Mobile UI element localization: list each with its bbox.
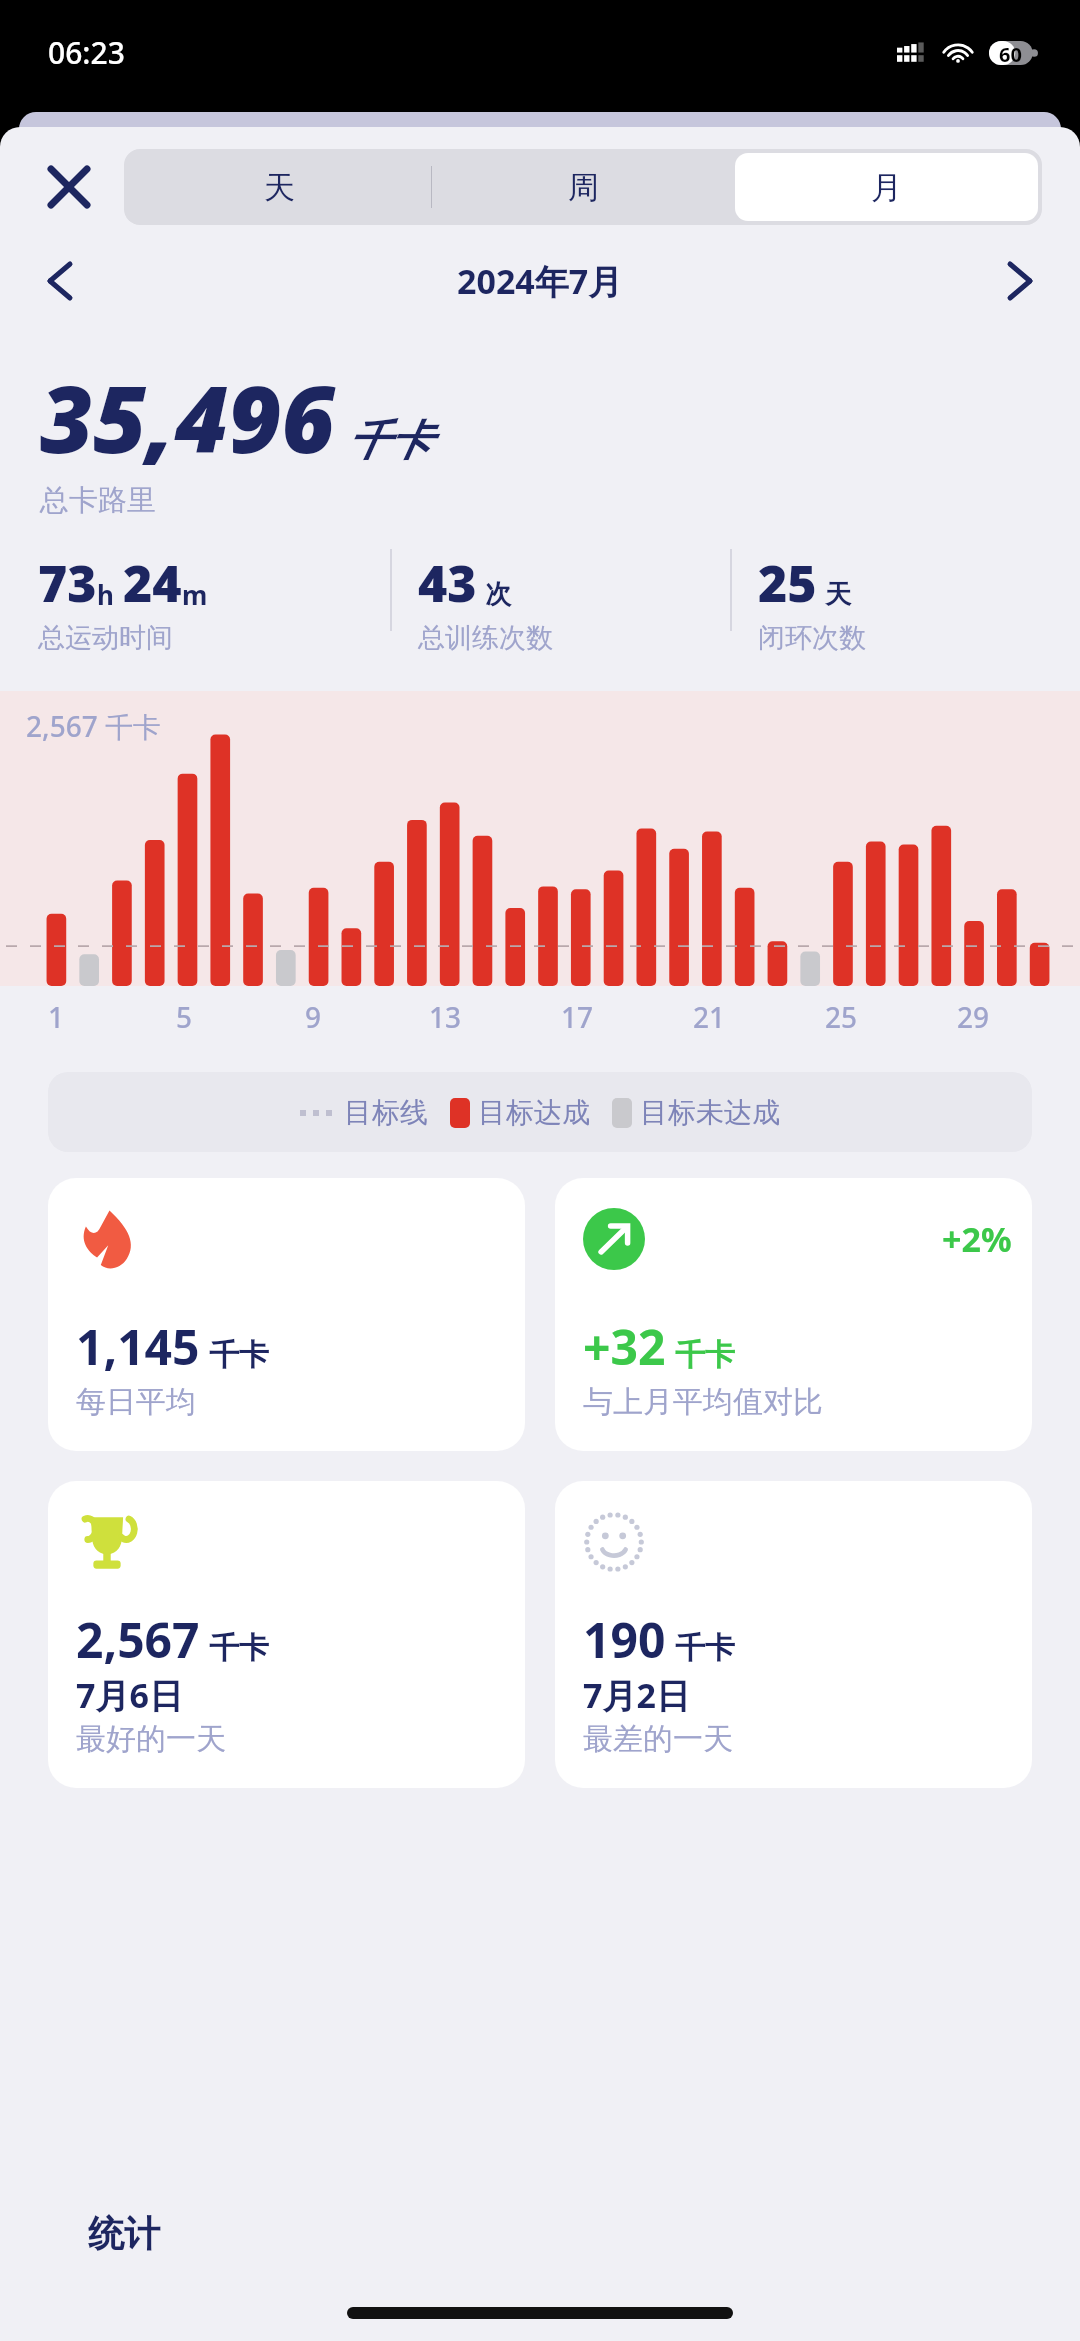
- staticText: h: [97, 577, 114, 612]
- staticText: 24: [123, 549, 182, 617]
- staticText: 天: [264, 168, 295, 207]
- staticText: 目标达成: [478, 1095, 590, 1130]
- staticText: 2024年7月: [457, 258, 623, 304]
- staticText: 1: [48, 998, 65, 1036]
- staticText: 与上月平均值对比: [583, 1383, 823, 1421]
- staticText: 13: [429, 998, 462, 1036]
- button[interactable]: 190: [555, 1481, 1032, 1788]
- staticText: 千卡: [675, 1629, 735, 1667]
- staticText: 千卡: [209, 1336, 269, 1374]
- staticText: 周: [568, 168, 599, 207]
- staticText: 21: [693, 998, 726, 1036]
- staticText: 17: [561, 998, 594, 1036]
- staticText: 目标未达成: [640, 1095, 780, 1130]
- staticText: 5: [176, 998, 193, 1036]
- staticText: 次: [485, 578, 511, 611]
- staticText: 73: [38, 549, 97, 617]
- staticText: 天: [825, 578, 851, 611]
- staticText: +32: [583, 1314, 666, 1379]
- staticText: 总运动时间: [38, 621, 173, 655]
- staticText: 2,567 千卡: [26, 707, 161, 745]
- staticText: 25: [825, 998, 858, 1036]
- staticText: 最好的一天: [76, 1720, 226, 1758]
- staticText: m: [182, 577, 208, 612]
- staticText: 06:23: [48, 32, 125, 73]
- staticText: 月: [871, 168, 902, 207]
- button[interactable]: 周: [432, 153, 735, 221]
- button[interactable]: +2%: [555, 1178, 1032, 1451]
- staticText: 统计: [88, 2211, 160, 2256]
- staticText: 最差的一天: [583, 1720, 733, 1758]
- staticText: 9: [305, 998, 322, 1036]
- staticText: 目标线: [344, 1095, 428, 1130]
- staticText: 7月6日: [76, 1672, 183, 1718]
- staticText: 2,567: [76, 1607, 200, 1672]
- staticText: 每日平均: [76, 1383, 196, 1421]
- button[interactable]: 月: [735, 153, 1038, 221]
- staticText: 7月2日: [583, 1672, 690, 1718]
- staticText: 闭环次数: [758, 621, 866, 655]
- staticText: 总卡路里: [40, 482, 156, 519]
- button[interactable]: 1,145: [48, 1178, 525, 1451]
- button[interactable]: 2,567: [48, 1481, 525, 1788]
- staticText: 1,145: [76, 1314, 200, 1379]
- staticText: 千卡: [675, 1336, 735, 1374]
- staticText: 35,496: [40, 355, 335, 480]
- button[interactable]: Close: [40, 158, 98, 216]
- staticText: +2%: [942, 1216, 1012, 1262]
- staticText: 千卡: [209, 1629, 269, 1667]
- staticText: 29: [957, 998, 990, 1036]
- staticText: 总训练次数: [418, 621, 553, 655]
- button[interactable]: Previous month: [30, 251, 90, 311]
- staticText: 43: [418, 549, 477, 617]
- staticText: 千卡: [347, 415, 431, 468]
- button[interactable]: 天: [128, 153, 431, 221]
- staticText: 190: [583, 1607, 666, 1672]
- staticText: 60: [999, 41, 1022, 65]
- staticText: 25: [758, 549, 817, 617]
- button[interactable]: Next month: [990, 251, 1050, 311]
